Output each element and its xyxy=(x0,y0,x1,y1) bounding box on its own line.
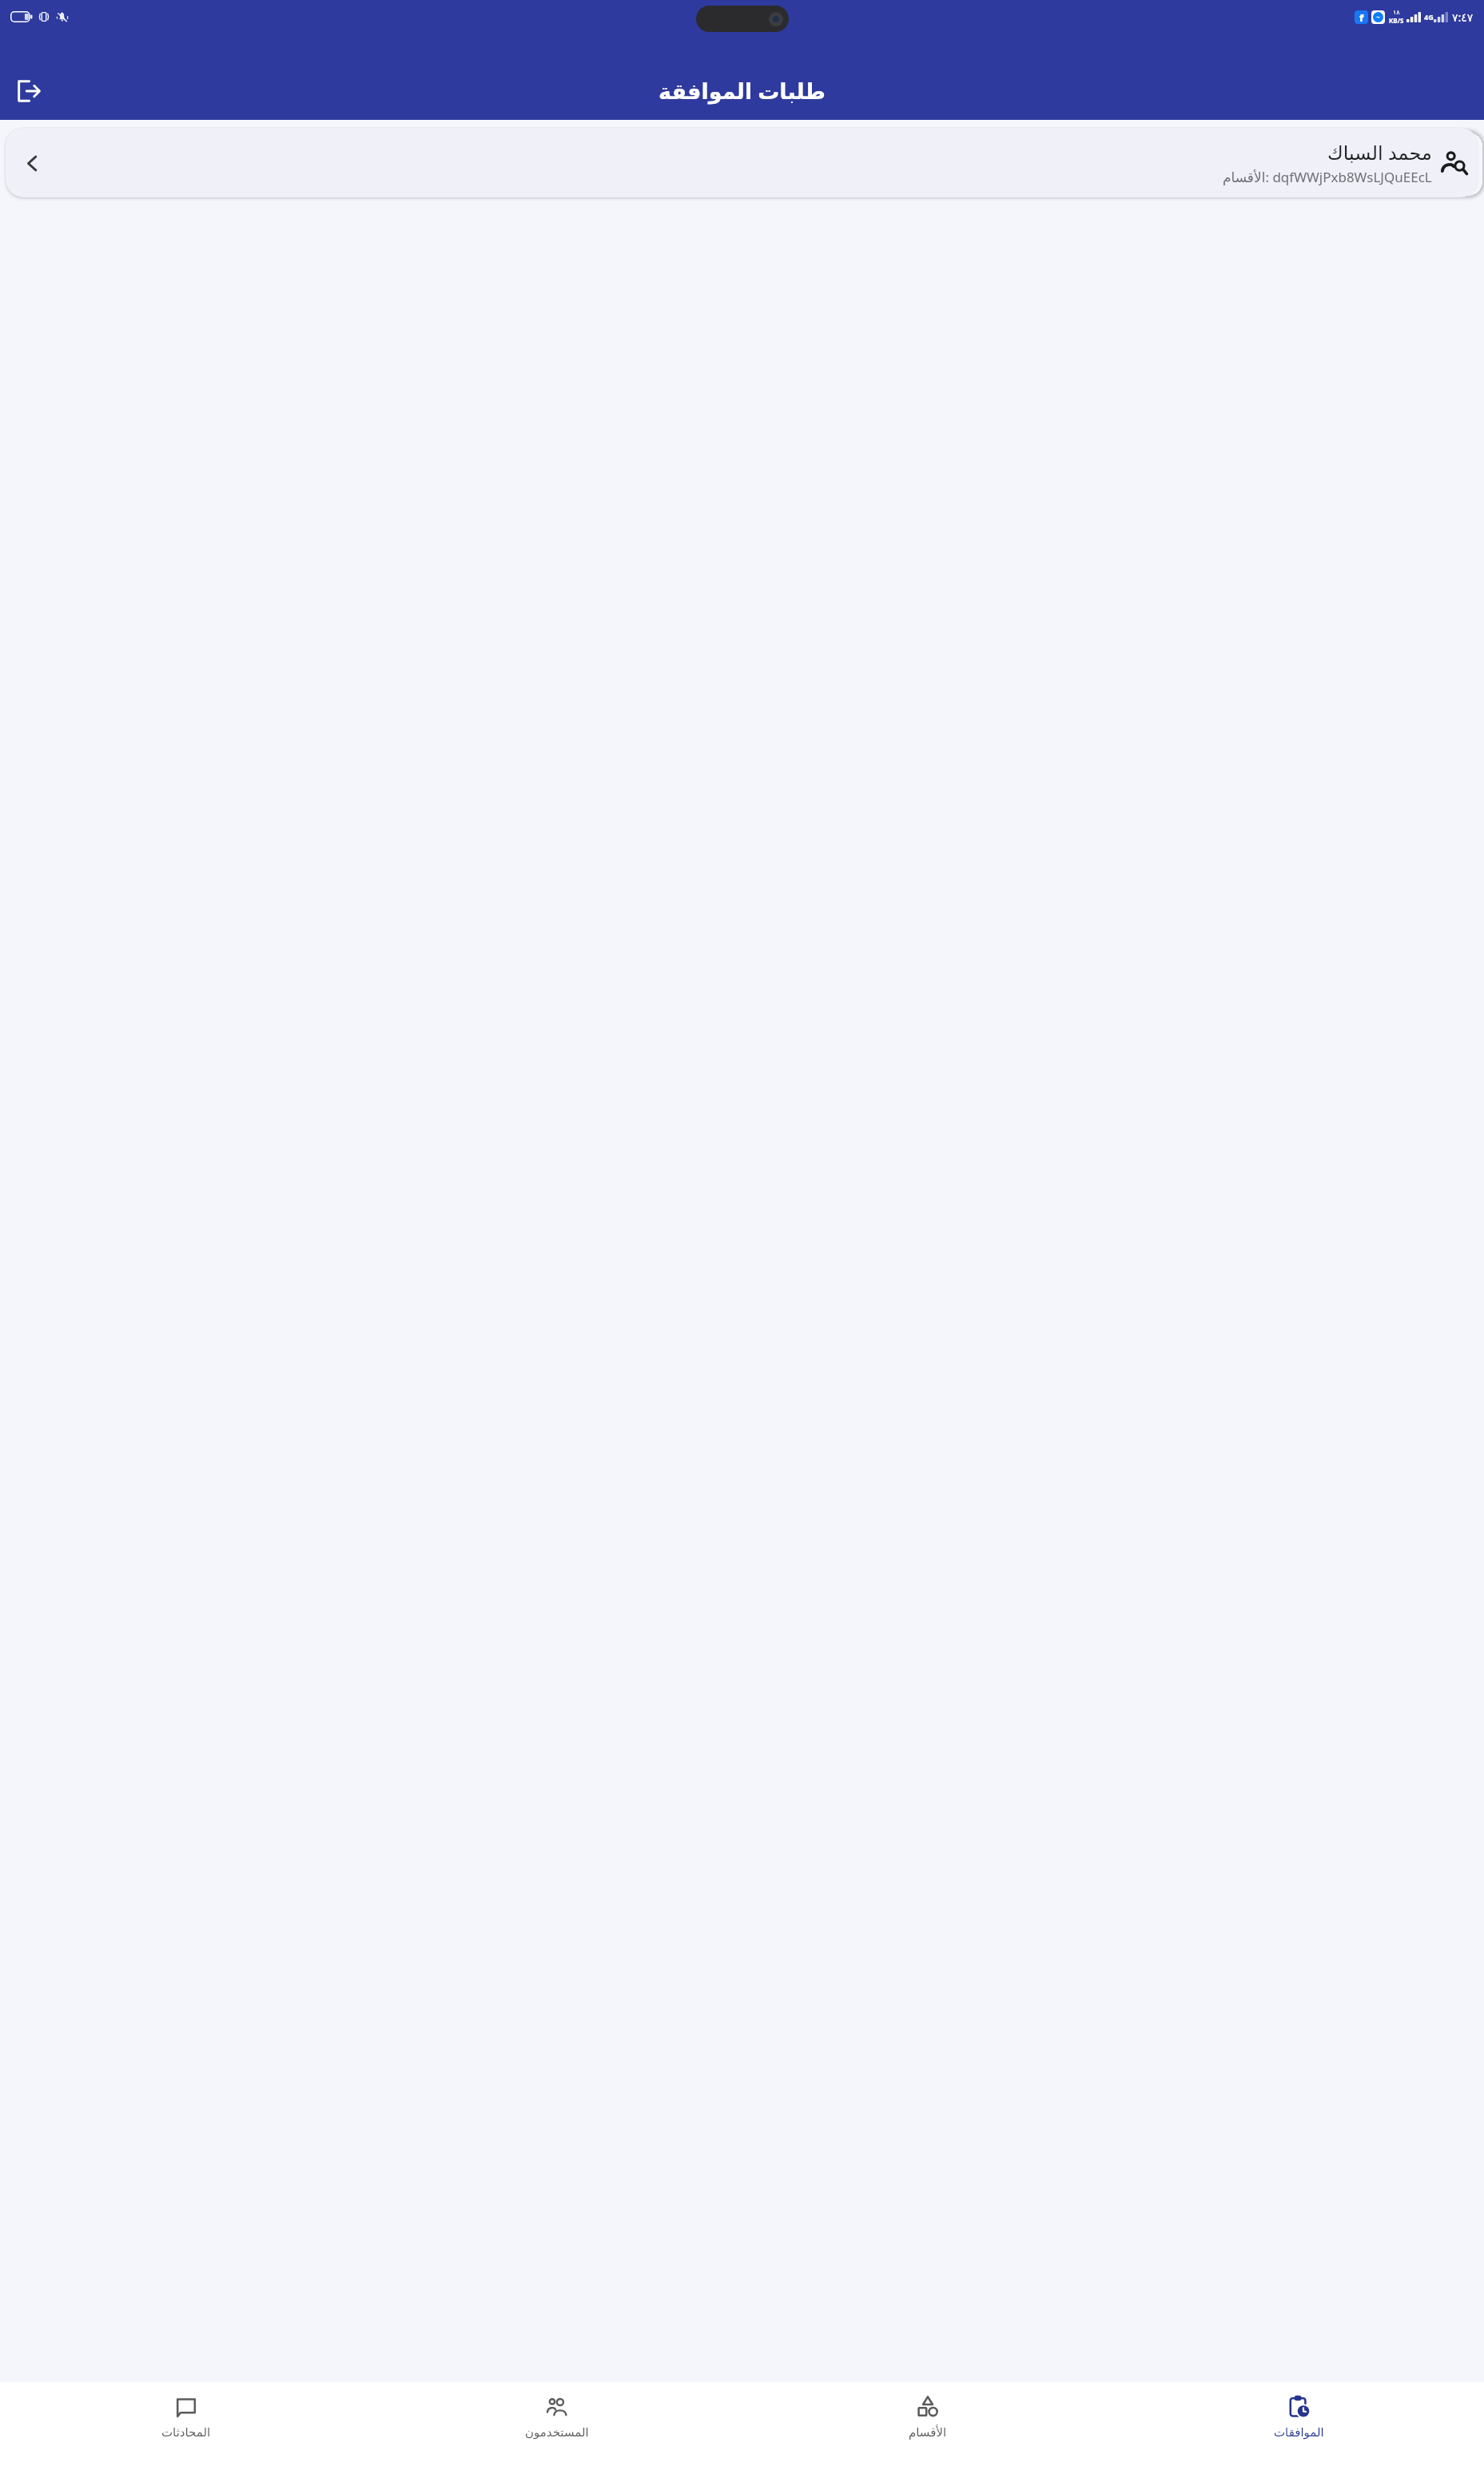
button[interactable]: Logout xyxy=(10,72,48,110)
staticText: الأقسام: dqfWWjPxb8WsLJQuEEcL xyxy=(1223,168,1432,186)
button[interactable]: Open request details xyxy=(6,128,1478,197)
staticText: الأقسام xyxy=(909,2425,947,2439)
staticText: طلبات الموافقة xyxy=(658,76,826,105)
staticText: 4G xyxy=(1424,12,1434,22)
button[interactable]: المحادثات xyxy=(0,2382,372,2474)
button[interactable]: الموافقات xyxy=(1113,2382,1484,2474)
staticText: ٧:٤٧ xyxy=(1452,10,1474,25)
staticText: f xyxy=(1359,10,1364,24)
button[interactable]: Open request details xyxy=(15,146,49,180)
staticText: المحادثات xyxy=(161,2425,211,2439)
staticText: KB/S xyxy=(1389,16,1404,25)
staticText: المستخدمون xyxy=(525,2425,589,2439)
staticText: ١٨ xyxy=(1393,9,1400,16)
staticText: الموافقات xyxy=(1274,2425,1324,2439)
button[interactable]: الأقسام xyxy=(742,2382,1113,2474)
staticText: محمد السباك xyxy=(1327,139,1432,165)
button[interactable]: المستخدمون xyxy=(372,2382,742,2474)
